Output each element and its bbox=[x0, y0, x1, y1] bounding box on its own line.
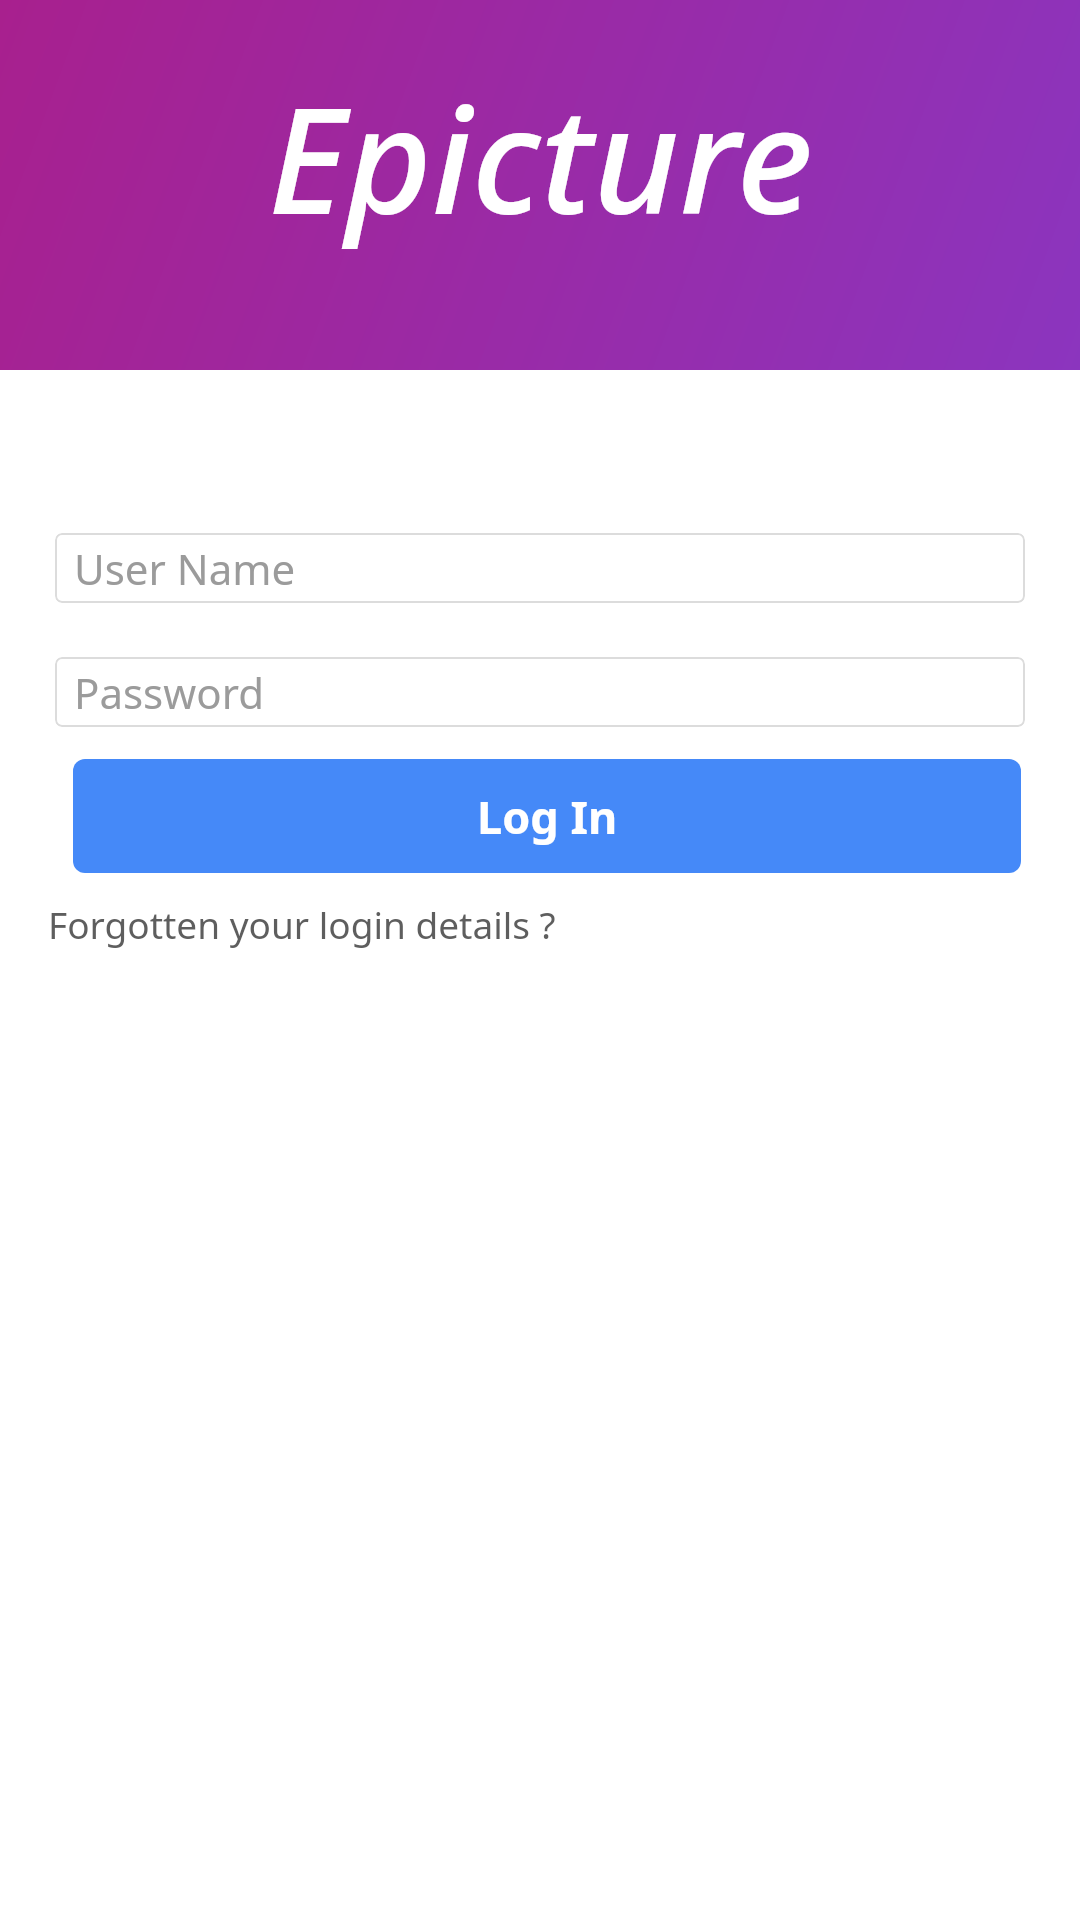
staticText: User Name bbox=[74, 540, 296, 597]
button[interactable]: Forgotten your login details ? bbox=[48, 899, 556, 949]
button[interactable]: Password bbox=[55, 657, 1025, 727]
staticText: Password bbox=[74, 664, 264, 721]
button[interactable]: User Name bbox=[55, 533, 1025, 603]
staticText: Log In bbox=[477, 786, 618, 847]
staticText: Forgotten your login details ? bbox=[48, 899, 556, 949]
staticText: Epicture bbox=[268, 56, 813, 258]
button[interactable]: Log In bbox=[73, 759, 1021, 873]
